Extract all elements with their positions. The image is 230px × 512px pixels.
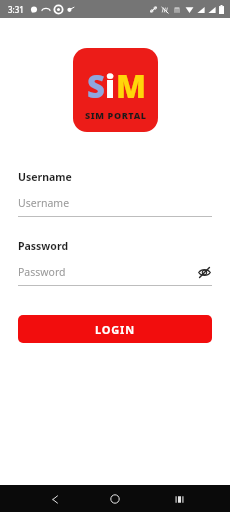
staticText: i: [105, 65, 116, 107]
button[interactable]: Recent apps: [168, 488, 190, 510]
staticText: M: [116, 65, 146, 107]
button[interactable]: Back: [44, 488, 66, 510]
staticText: Password: [18, 239, 69, 253]
staticText: SIM PORTAL: [85, 109, 147, 121]
staticText: Username: [18, 196, 70, 210]
staticText: 3:31: [8, 4, 24, 15]
staticText: LOGIN: [95, 322, 135, 337]
button[interactable]: S: [73, 48, 158, 132]
staticText: Username: [18, 170, 72, 184]
staticText: S: [87, 65, 105, 107]
staticText: Password: [18, 265, 66, 279]
button[interactable]: LOGIN: [18, 315, 212, 343]
button[interactable]: Home: [104, 488, 126, 510]
button[interactable]: Show password: [196, 264, 212, 280]
